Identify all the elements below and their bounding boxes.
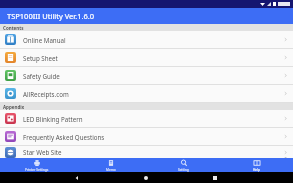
button[interactable]: Memo xyxy=(74,158,147,172)
staticText: Star Web Site xyxy=(23,148,283,156)
button[interactable]: Star Web Site xyxy=(0,146,293,158)
staticText: Memo xyxy=(106,168,116,172)
staticText: LED Blinking Pattern xyxy=(23,115,283,123)
button[interactable]: AllReceipts.com xyxy=(0,85,293,102)
button[interactable]: Setup Sheet xyxy=(0,49,293,66)
staticText: Online Manual xyxy=(23,36,283,44)
staticText: Setting xyxy=(178,168,189,172)
button[interactable]: Printer Settings xyxy=(0,158,74,172)
button[interactable]: LED Blinking Pattern xyxy=(0,110,293,127)
staticText: Help xyxy=(253,168,260,172)
button[interactable]: Help xyxy=(220,158,293,172)
staticText: Appendix xyxy=(3,104,25,110)
staticText: Frequently Asked Questions xyxy=(23,133,283,141)
button[interactable]: Frequently Asked Questions xyxy=(0,128,293,145)
button[interactable]: Setting xyxy=(147,158,220,172)
staticText: Setup Sheet xyxy=(23,54,283,62)
staticText: AllReceipts.com xyxy=(23,90,283,98)
staticText: Contents xyxy=(3,25,24,31)
staticText: Safety Guide xyxy=(23,72,283,80)
button[interactable]: Safety Guide xyxy=(0,67,293,84)
staticText: Printer Settings xyxy=(25,168,49,172)
button[interactable]: Online Manual xyxy=(0,31,293,48)
other: Back xyxy=(75,176,79,180)
staticText: TSP100III Utility Ver.1.6.0 xyxy=(7,11,95,21)
other: Home xyxy=(144,176,148,180)
